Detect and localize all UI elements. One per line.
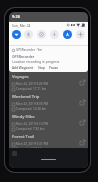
staticText: Location recording in progress — [12, 59, 60, 63]
button[interactable]: Quick setting — [37, 30, 46, 39]
button[interactable]: Quick setting — [50, 30, 59, 39]
button[interactable]: Pause — [49, 66, 59, 70]
staticText: Mon 24, 2019 8:05 PM — [16, 102, 49, 106]
button[interactable]: Quick setting — [12, 30, 21, 39]
button[interactable]: Quick setting — [24, 30, 33, 39]
button[interactable]: Windy Hike — [9, 112, 88, 132]
button[interactable]: Export trip — [79, 139, 85, 145]
button[interactable]: Export trip — [79, 119, 85, 125]
button[interactable]: Stop — [38, 66, 45, 70]
staticText: 9:26 — [12, 14, 20, 19]
staticText: Computed: 14.38 km — [16, 107, 47, 111]
staticText: Mon 23, 2019 5:31 PM — [16, 142, 49, 146]
button[interactable]: Quick setting — [63, 30, 72, 39]
staticText: Computed: 5.04 km — [16, 147, 45, 151]
staticText: Mon 24, 2019 6:13 PM — [16, 122, 49, 126]
staticText: Computed: 7.92 km — [16, 127, 45, 131]
staticText: Computed: 17.11 km — [16, 87, 47, 91]
staticText: Forest Trail — [12, 134, 35, 140]
button[interactable]: GPSRecorder · 9m — [9, 46, 88, 70]
staticText: Sun, Mar 24 — [12, 23, 31, 27]
button[interactable]: Weekend Trip — [9, 92, 88, 112]
staticText: GPSRecorder · 9m — [16, 48, 43, 52]
staticText: GPSRecorder — [12, 54, 35, 59]
button[interactable]: Export trip — [79, 79, 85, 85]
button[interactable]: Voyages — [9, 72, 88, 92]
button[interactable]: Forest Trail — [9, 132, 88, 152]
staticText: Voyages — [12, 74, 29, 80]
staticText: Mon 24, 2019 9:26 PM — [16, 82, 49, 86]
button[interactable]: Export trip — [79, 99, 85, 105]
staticText: Windy Hike — [12, 114, 35, 120]
staticText: Weekend Trip — [12, 94, 40, 100]
button[interactable]: Quick setting — [76, 30, 85, 39]
button[interactable]: Add Waypoint — [12, 66, 34, 70]
